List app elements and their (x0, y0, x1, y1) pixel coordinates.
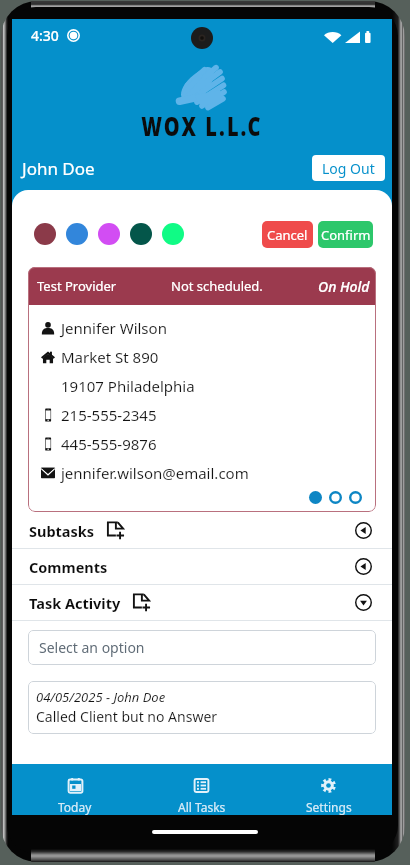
button[interactable]: 04/05/2025 - John Doe (28, 681, 376, 734)
staticText: Comments (29, 557, 108, 577)
staticText: Test Provider (37, 277, 117, 295)
button[interactable]: Select an option (28, 630, 376, 665)
button[interactable]: Comments (12, 549, 392, 584)
staticText: WOX L.L.C (141, 107, 263, 143)
staticText: Called Client but no Answer (36, 707, 218, 726)
button[interactable]: Cancel (262, 221, 313, 248)
button[interactable]: Log Out (312, 155, 385, 181)
button[interactable]: Today (12, 764, 138, 815)
staticText: 04/05/2025 - John Doe (36, 688, 166, 706)
staticText: All Tasks (178, 799, 226, 815)
staticText: Cancel (267, 226, 308, 244)
staticText: jennifer.wilson@email.com (61, 463, 249, 483)
button[interactable]: Subtasks (12, 513, 392, 548)
staticText: Settings (306, 799, 352, 815)
staticText: Not scheduled. (171, 277, 263, 295)
staticText: Today (58, 799, 92, 815)
staticText: 4:30 (31, 26, 59, 45)
staticText: On Hold (318, 277, 370, 296)
staticText: Task Activity (29, 593, 121, 613)
button[interactable]: Settings (265, 764, 392, 815)
button[interactable]: Color swatch (162, 223, 184, 245)
staticText: John Doe (22, 157, 95, 180)
button[interactable]: All Tasks (138, 764, 265, 815)
staticText: Subtasks (29, 521, 95, 541)
staticText: Market St 890 (61, 347, 159, 367)
button[interactable]: Color swatch (98, 223, 120, 245)
staticText: Select an option (39, 638, 145, 657)
staticText: Jennifer Wilson (61, 318, 167, 338)
staticText: 445-555-9876 (61, 434, 157, 454)
staticText: Confirm (321, 226, 371, 244)
staticText: 215-555-2345 (61, 405, 157, 425)
button[interactable]: Color swatch (34, 223, 56, 245)
staticText: 19107 Philadelphia (61, 376, 195, 396)
button[interactable]: Color swatch (130, 223, 152, 245)
button[interactable]: Confirm (318, 221, 373, 248)
button[interactable]: Task Activity (12, 585, 392, 620)
button[interactable]: Test Provider (28, 267, 376, 512)
button[interactable]: Color swatch (66, 223, 88, 245)
staticText: Log Out (322, 159, 375, 178)
